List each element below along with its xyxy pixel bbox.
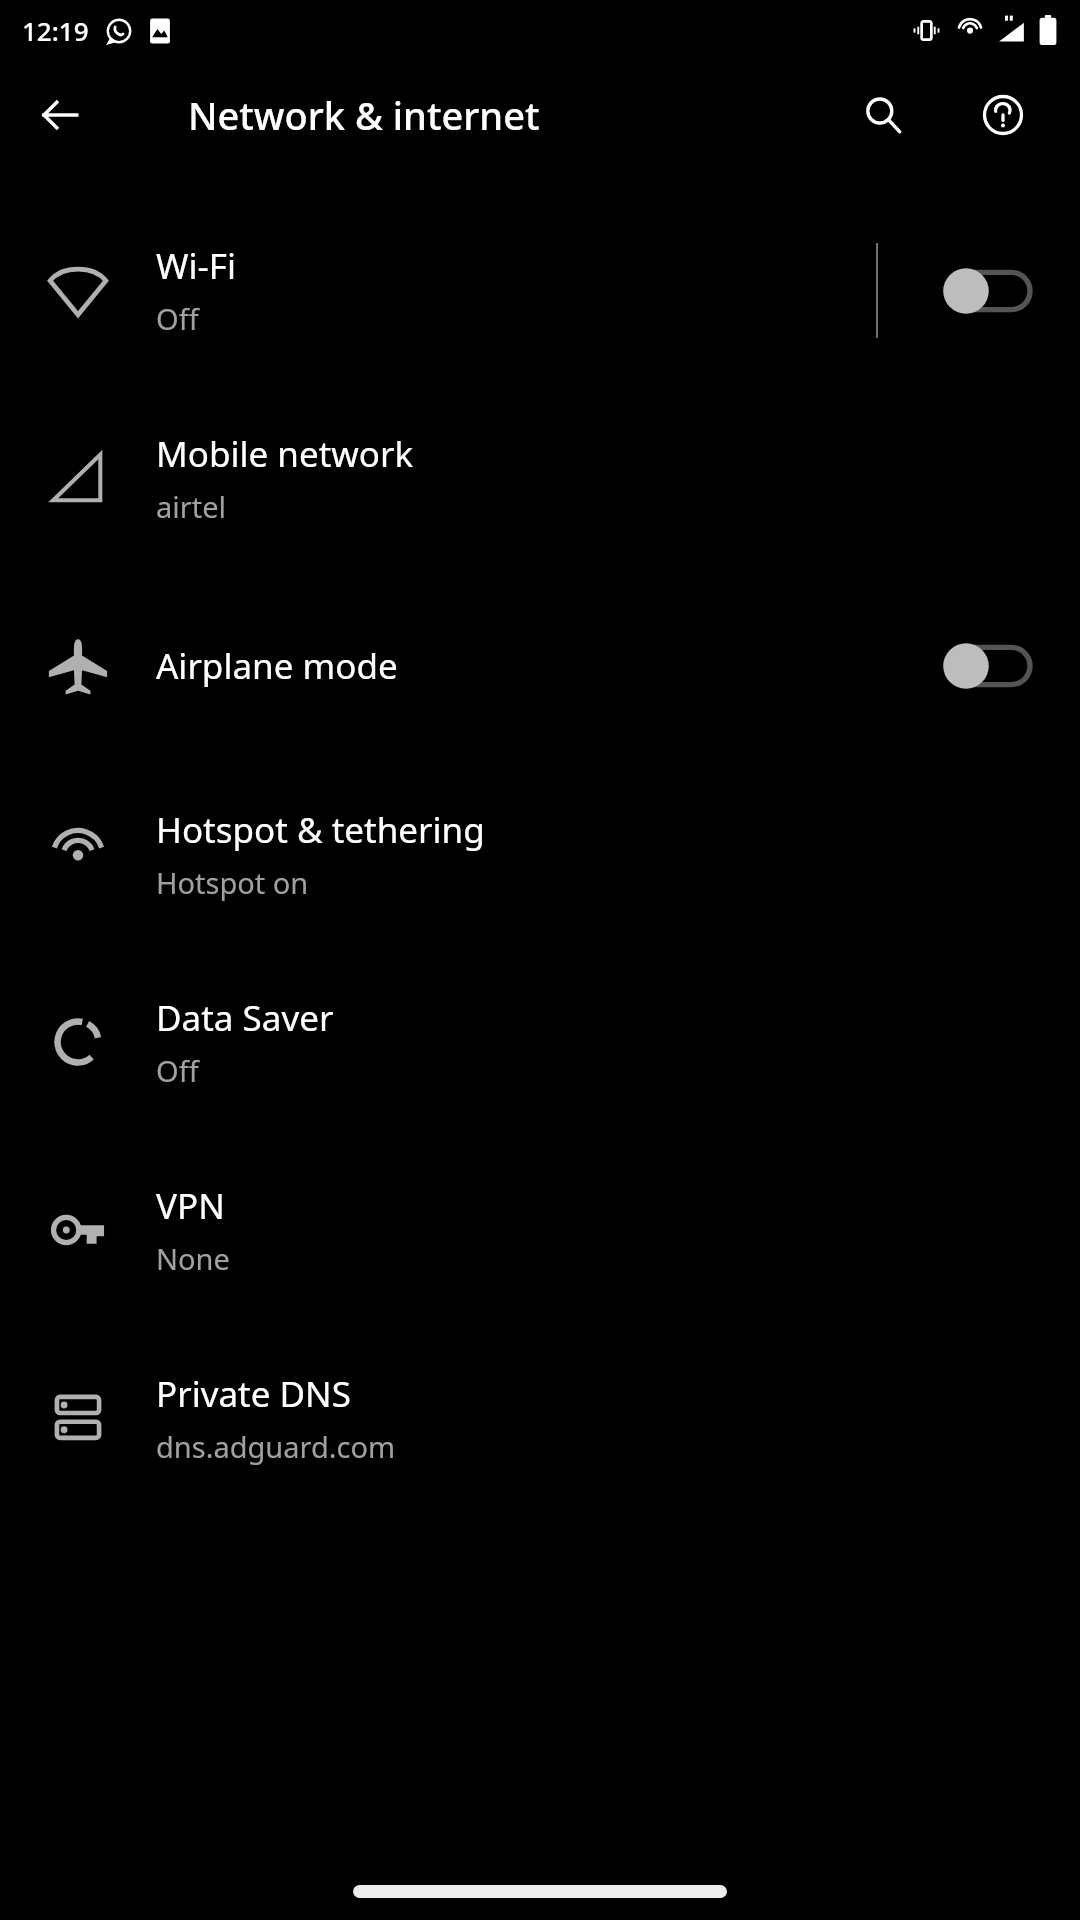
staticText: Private DNS: [156, 1370, 351, 1418]
button[interactable]: Wi-Fi: [0, 196, 1080, 384]
staticText: Wi-Fi: [156, 242, 237, 290]
button[interactable]: Hotspot & tethering: [0, 760, 1080, 948]
staticText: Airplane mode: [156, 642, 398, 690]
button[interactable]: Private DNS: [0, 1324, 1080, 1512]
staticText: Hotspot on: [156, 863, 309, 902]
staticText: Off: [156, 299, 199, 338]
button[interactable]: [936, 636, 1036, 696]
staticText: None: [156, 1239, 230, 1278]
staticText: Data Saver: [156, 994, 334, 1042]
button[interactable]: [936, 261, 1036, 321]
button[interactable]: Mobile network: [0, 384, 1080, 572]
button[interactable]: Search: [844, 76, 922, 154]
staticText: Network & internet: [188, 89, 540, 141]
staticText: VPN: [156, 1182, 225, 1230]
staticText: Off: [156, 1051, 199, 1090]
staticText: dns.adguard.com: [156, 1427, 396, 1466]
button[interactable]: VPN: [0, 1136, 1080, 1324]
staticText: Hotspot & tethering: [156, 806, 485, 854]
staticText: 12:19: [22, 13, 89, 48]
button[interactable]: Back: [24, 79, 96, 151]
staticText: airtel: [156, 487, 227, 526]
button[interactable]: Data Saver: [0, 948, 1080, 1136]
button[interactable]: Help: [964, 76, 1042, 154]
staticText: Mobile network: [156, 430, 414, 478]
button[interactable]: Airplane mode: [0, 572, 1080, 760]
